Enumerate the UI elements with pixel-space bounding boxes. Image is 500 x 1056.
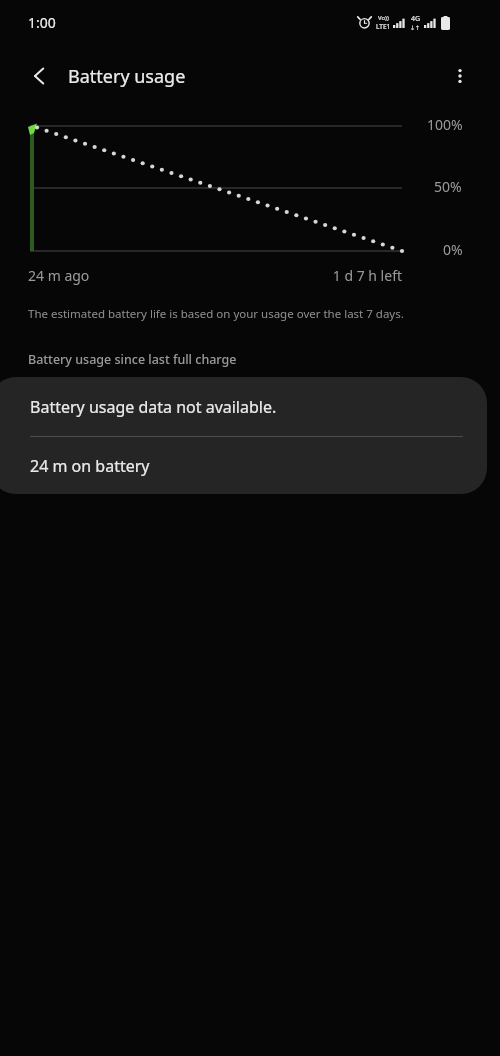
staticText: 1 d 7 h left xyxy=(302,266,402,285)
button[interactable]: More options xyxy=(438,54,482,98)
button[interactable]: Battery usage data not available. xyxy=(0,377,487,436)
staticText: 0% xyxy=(443,240,463,259)
staticText: 1:00 xyxy=(28,13,56,32)
staticText: Battery usage xyxy=(68,64,186,89)
staticText: 24 m ago xyxy=(28,266,90,285)
staticText: 100% xyxy=(427,115,463,134)
button[interactable]: 24 m on battery xyxy=(0,437,487,494)
staticText: The estimated battery life is based on y… xyxy=(28,306,404,322)
staticText: LTE1 xyxy=(376,22,391,31)
staticText: 50% xyxy=(434,177,462,196)
staticText: 24 m on battery xyxy=(30,455,150,477)
staticText: 4G xyxy=(411,14,421,24)
staticText: Vo)) xyxy=(378,14,389,22)
button[interactable]: Back xyxy=(18,54,62,98)
staticText: Battery usage since last full charge xyxy=(28,351,237,368)
staticText: ↓↑ xyxy=(410,24,421,31)
staticText: Battery usage data not available. xyxy=(30,396,277,418)
